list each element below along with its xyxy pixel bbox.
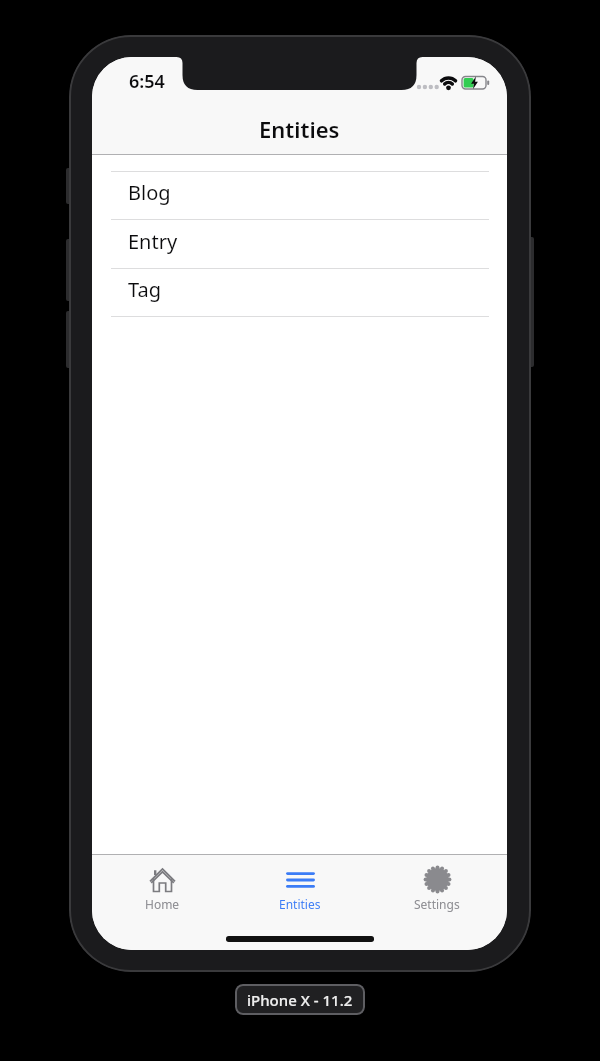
button[interactable]: Settings [382,854,492,950]
button[interactable]: Home [107,854,217,950]
staticText: Entities [279,896,321,912]
staticText: Home [145,896,180,912]
button[interactable]: Blog [111,169,489,216]
staticText: iPhone X - 11.2 [247,990,353,1010]
staticText: Blog [128,179,171,206]
button[interactable]: Entities [245,854,355,950]
staticText: Entities [259,114,340,144]
staticText: Tag [128,276,162,303]
staticText: Entry [128,228,178,255]
staticText: Settings [414,896,460,912]
staticText: 6:54 [129,69,165,93]
button[interactable]: Tag [111,266,489,313]
button[interactable]: Entry [111,218,489,265]
button[interactable]: iPhone X - 11.2 [235,984,365,1015]
